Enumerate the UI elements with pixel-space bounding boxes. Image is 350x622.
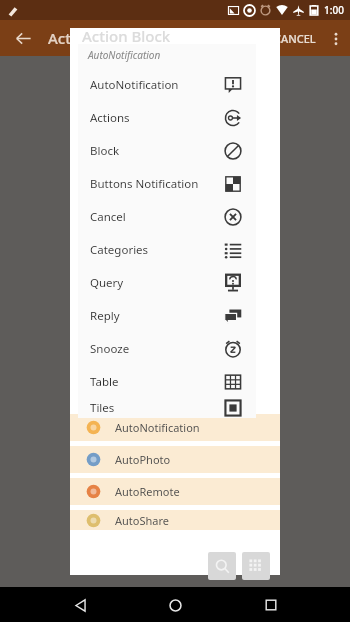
staticText: AutoShare	[115, 513, 169, 528]
staticText: AutoPhoto	[115, 452, 171, 467]
button[interactable]: Query	[78, 266, 256, 299]
button[interactable]: Tiles	[78, 398, 256, 418]
button[interactable]: AutoNotification	[78, 68, 256, 101]
staticText: Tiles	[90, 400, 224, 416]
staticText: AutoNotification	[90, 77, 224, 93]
staticText: Block	[90, 143, 224, 159]
button[interactable]: Cancel	[78, 200, 256, 233]
staticText: Actions	[90, 110, 224, 126]
button[interactable]: AutoNotification	[70, 414, 280, 441]
button[interactable]: More options	[322, 25, 350, 53]
staticText: CANCEL	[274, 31, 316, 46]
button[interactable]: Search	[208, 552, 236, 580]
button[interactable]: Buttons Notification	[78, 167, 256, 200]
button[interactable]: Table	[78, 365, 256, 398]
staticText: AutoNotification	[115, 420, 200, 435]
staticText: Buttons Notification	[90, 176, 224, 192]
button[interactable]: Recents	[255, 589, 287, 621]
button[interactable]: AutoRemote	[70, 478, 280, 505]
button[interactable]: Snooze	[78, 332, 256, 365]
staticText: Reply	[90, 308, 224, 324]
staticText: Action Block	[82, 26, 171, 46]
button[interactable]: Actions	[78, 101, 256, 134]
button[interactable]: Home	[159, 589, 191, 621]
staticText: 1:00	[324, 3, 344, 17]
staticText: Table	[90, 374, 224, 390]
button[interactable]: Grid view	[242, 552, 270, 580]
staticText: Query	[90, 275, 224, 291]
button[interactable]: Back	[6, 21, 40, 55]
button[interactable]: CANCEL	[268, 23, 322, 54]
button[interactable]: AutoPhoto	[70, 446, 280, 473]
button[interactable]: Categories	[78, 233, 256, 266]
staticText: Snooze	[90, 341, 224, 357]
button[interactable]: AutoShare	[70, 510, 280, 530]
staticText: Action Block	[48, 28, 137, 48]
staticText: AutoRemote	[115, 484, 180, 499]
staticText: AutoNotification	[88, 48, 161, 62]
button[interactable]: Back	[64, 589, 96, 621]
staticText: Cancel	[90, 209, 224, 225]
staticText: Categories	[90, 242, 224, 258]
button[interactable]: Block	[78, 134, 256, 167]
button[interactable]: Reply	[78, 299, 256, 332]
